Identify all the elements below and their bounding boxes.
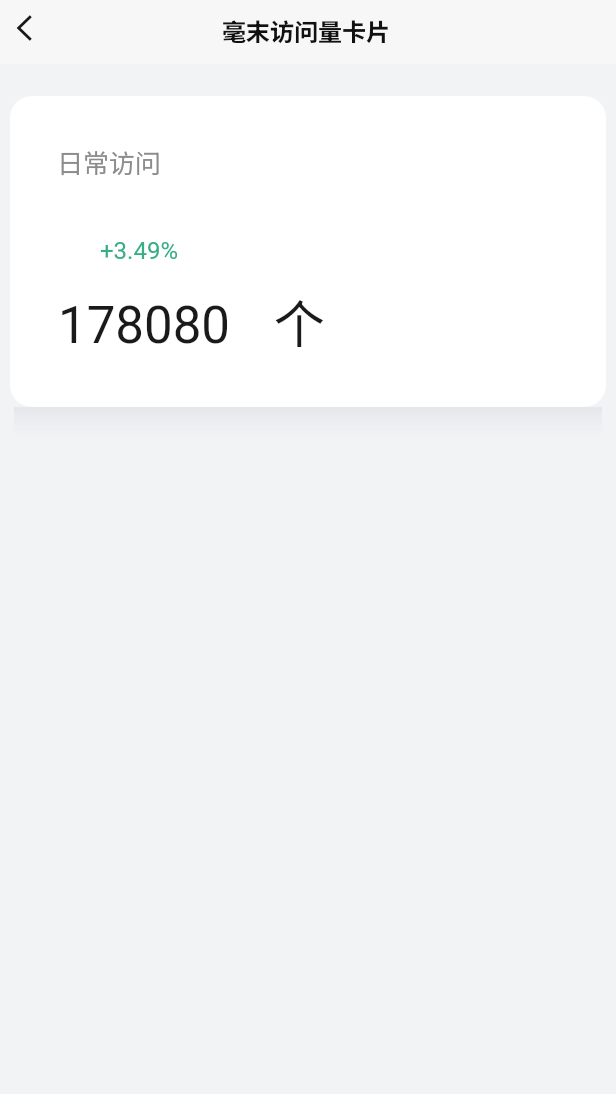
staticText: 178080 <box>58 296 230 356</box>
staticText: 毫末访问量卡片 <box>222 13 390 48</box>
button[interactable]: 日常访问 <box>10 96 606 407</box>
button[interactable]: Back <box>0 0 50 64</box>
staticText: 个 <box>274 284 326 358</box>
staticText: 日常访问 <box>57 143 162 181</box>
staticText: +3.49% <box>100 237 178 265</box>
